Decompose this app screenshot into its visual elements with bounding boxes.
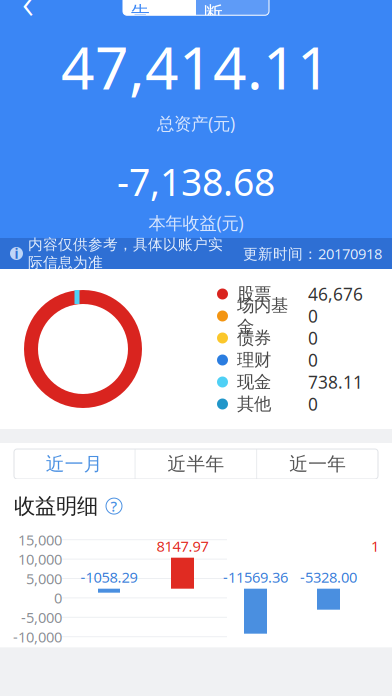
- staticText: 0: [308, 304, 318, 327]
- staticText: -10,000: [13, 627, 62, 646]
- staticText: 8147.97: [156, 536, 208, 556]
- staticText: 总资产(元): [157, 112, 235, 135]
- staticText: i: [14, 245, 18, 262]
- staticText: 15,000: [18, 530, 62, 549]
- button[interactable]: 近一月: [14, 449, 135, 479]
- staticText: 账户报告: [131, 0, 188, 25]
- staticText: 5,000: [26, 569, 62, 588]
- staticText: 近一年: [289, 452, 346, 475]
- staticText: -7,138.68: [117, 157, 275, 206]
- staticText: -1058.29: [80, 567, 137, 587]
- staticText: 理财: [237, 349, 271, 371]
- staticText: 现金: [237, 371, 271, 393]
- button[interactable]: 帮助: [106, 498, 122, 514]
- staticText: 场内基金: [237, 295, 288, 337]
- button[interactable]: 账户诊断: [196, 0, 269, 15]
- staticText: ‹: [22, 0, 34, 32]
- staticText: 账户诊断: [204, 0, 261, 25]
- staticText: 738.11: [308, 370, 363, 393]
- staticText: 0: [308, 326, 318, 349]
- button[interactable]: 账户报告: [123, 0, 196, 15]
- staticText: 47,414.11: [61, 28, 331, 106]
- staticText: 0: [308, 392, 318, 415]
- staticText: 债券: [237, 327, 271, 349]
- staticText: 近一月: [46, 452, 103, 475]
- staticText: 收益明细: [14, 493, 98, 519]
- staticText: 股票: [237, 283, 271, 305]
- staticText: 1: [371, 536, 379, 556]
- staticText: -5328.00: [300, 567, 357, 587]
- button[interactable]: Back: [6, 0, 50, 22]
- staticText: -11569.36: [223, 567, 288, 587]
- staticText: 更新时间：20170918: [243, 244, 382, 263]
- staticText: 10,000: [18, 549, 62, 569]
- staticText: 近半年: [167, 452, 224, 475]
- staticText: 0: [308, 348, 318, 371]
- staticText: 内容仅供参考，具体以账户实际信息为准: [28, 235, 223, 271]
- staticText: ?: [110, 496, 117, 516]
- staticText: 46,676: [308, 282, 363, 305]
- button[interactable]: 近一年: [257, 449, 378, 479]
- staticText: 本年收益(元): [148, 211, 243, 234]
- staticText: 其他: [237, 393, 271, 415]
- button[interactable]: 近半年: [136, 449, 256, 479]
- staticText: -5,000: [21, 608, 62, 627]
- staticText: 0: [54, 588, 62, 608]
